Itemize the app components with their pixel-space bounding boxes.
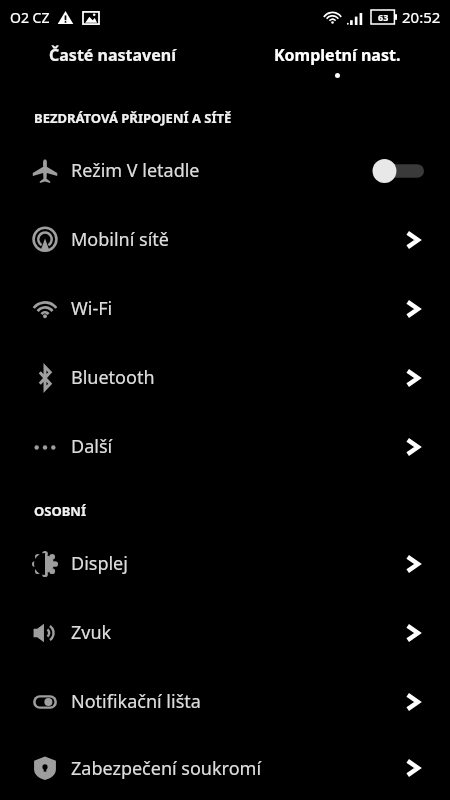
button[interactable]: Security (0, 736, 450, 800)
staticText: Časté nastavení (49, 44, 176, 66)
staticText: Režim V letadle (71, 158, 200, 183)
other: Sound (32, 620, 58, 646)
staticText: Kompletní nast. (274, 44, 401, 66)
other: Security (32, 755, 58, 781)
button[interactable]: Časté nastavení (0, 34, 225, 90)
button[interactable]: Notification bar (0, 667, 450, 736)
staticText: 63 (378, 11, 389, 23)
button[interactable]: Wi-Fi (0, 274, 450, 343)
staticText: Displej (71, 551, 128, 576)
button[interactable]: Kompletní nast. (225, 34, 450, 90)
other: Notification bar (32, 689, 58, 715)
staticText: 20:52 (402, 7, 441, 27)
button[interactable]: Airplane mode (0, 136, 450, 205)
staticText: O2 CZ (10, 8, 50, 27)
staticText: Bluetooth (71, 365, 155, 390)
staticText: Mobilní sítě (71, 227, 169, 252)
other: Mobile networks (32, 227, 58, 253)
other: Bluetooth (32, 365, 58, 391)
other: Airplane mode (32, 158, 58, 184)
button[interactable]: Bluetooth (0, 343, 450, 412)
staticText: Zvuk (71, 620, 112, 645)
staticText: BEZDRÁTOVÁ PŘIPOJENÍ A SÍTĚ (34, 109, 232, 127)
button[interactable]: Display (0, 529, 450, 598)
staticText: Zabezpečení soukromí (71, 756, 262, 781)
other: Display (32, 551, 58, 577)
staticText: OSOBNÍ (34, 502, 87, 520)
staticText: Další (71, 434, 113, 459)
other: More (32, 434, 58, 460)
button[interactable]: More (0, 412, 450, 481)
staticText: Wi-Fi (71, 296, 113, 321)
button[interactable]: Mobile networks (0, 205, 450, 274)
staticText: Notifikační lišta (71, 689, 201, 714)
button[interactable]: Sound (0, 598, 450, 667)
other: Wi-Fi (32, 296, 58, 322)
